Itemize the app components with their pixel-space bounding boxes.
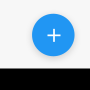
button[interactable]: Add [32, 14, 74, 56]
